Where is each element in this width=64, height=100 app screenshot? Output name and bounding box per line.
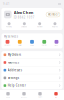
staticText: Cards	[42, 44, 47, 46]
button[interactable]: Settings	[1, 74, 63, 82]
staticText: My Orders	[8, 53, 21, 56]
button[interactable]: Me	[48, 92, 64, 98]
button[interactable]: Shipped	[17, 22, 32, 28]
button[interactable]: Favorites	[1, 59, 63, 66]
button[interactable]: Member	[46, 12, 60, 17]
staticText: Wallet	[18, 44, 21, 46]
staticText: Addresses	[8, 68, 22, 72]
staticText: Help Center	[8, 84, 26, 87]
button[interactable]: Pending	[1, 22, 17, 28]
staticText: My Services	[4, 35, 18, 38]
button[interactable]: More	[50, 40, 63, 46]
button[interactable]: Discover	[16, 92, 32, 98]
staticText: Review	[37, 26, 42, 28]
staticText: Favorites	[8, 61, 19, 64]
button[interactable]: Wallet	[14, 40, 26, 46]
staticText: Home	[6, 96, 10, 98]
staticText: Alex Chen	[14, 10, 34, 15]
staticText: Discover	[20, 96, 27, 98]
button[interactable]: Home	[0, 92, 16, 98]
staticText: 9:41	[3, 2, 10, 6]
staticText: Shipped	[21, 26, 27, 28]
staticText: Orders	[4, 44, 10, 46]
button[interactable]: Addresses	[1, 66, 63, 74]
staticText: Settings	[8, 76, 19, 80]
button[interactable]: Orders	[1, 40, 14, 46]
staticText: More	[54, 44, 58, 46]
staticText: Member	[47, 13, 58, 16]
staticText: ID 8842 1097	[14, 16, 35, 19]
button[interactable]: My Orders	[1, 51, 63, 58]
staticText: Cart	[38, 96, 41, 98]
staticText: Me	[55, 96, 57, 98]
staticText: Returns	[52, 26, 58, 28]
button[interactable]: Review	[32, 22, 47, 28]
button[interactable]: Cards	[38, 40, 50, 46]
staticText: Pending	[6, 26, 12, 28]
button[interactable]: Profile photo	[4, 11, 12, 18]
staticText: Points	[30, 44, 34, 46]
button[interactable]: Cart	[32, 92, 48, 98]
button[interactable]: Help Center	[1, 82, 63, 89]
button[interactable]: Returns	[47, 22, 63, 28]
button[interactable]: Points	[26, 40, 38, 46]
